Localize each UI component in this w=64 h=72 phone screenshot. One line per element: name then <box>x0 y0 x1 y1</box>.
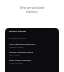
staticText: Last 7 days <box>9 54 20 57</box>
staticText: Since Monday <box>9 62 23 65</box>
staticText: Weekly average spend <box>9 51 34 54</box>
button[interactable]: Daily trend overview <box>7 59 57 65</box>
button[interactable]: Your spending summary <box>7 43 57 49</box>
button[interactable]: Weekly average spend <box>7 51 57 57</box>
staticText: Budget Outlook <box>9 37 27 40</box>
staticText: Your spending summary <box>9 43 36 46</box>
staticText: Recent activity <box>9 29 27 32</box>
staticText: Updated today <box>9 46 24 49</box>
staticText: View personalized statistics <box>0 6 64 14</box>
staticText: Daily trend overview <box>9 59 31 62</box>
